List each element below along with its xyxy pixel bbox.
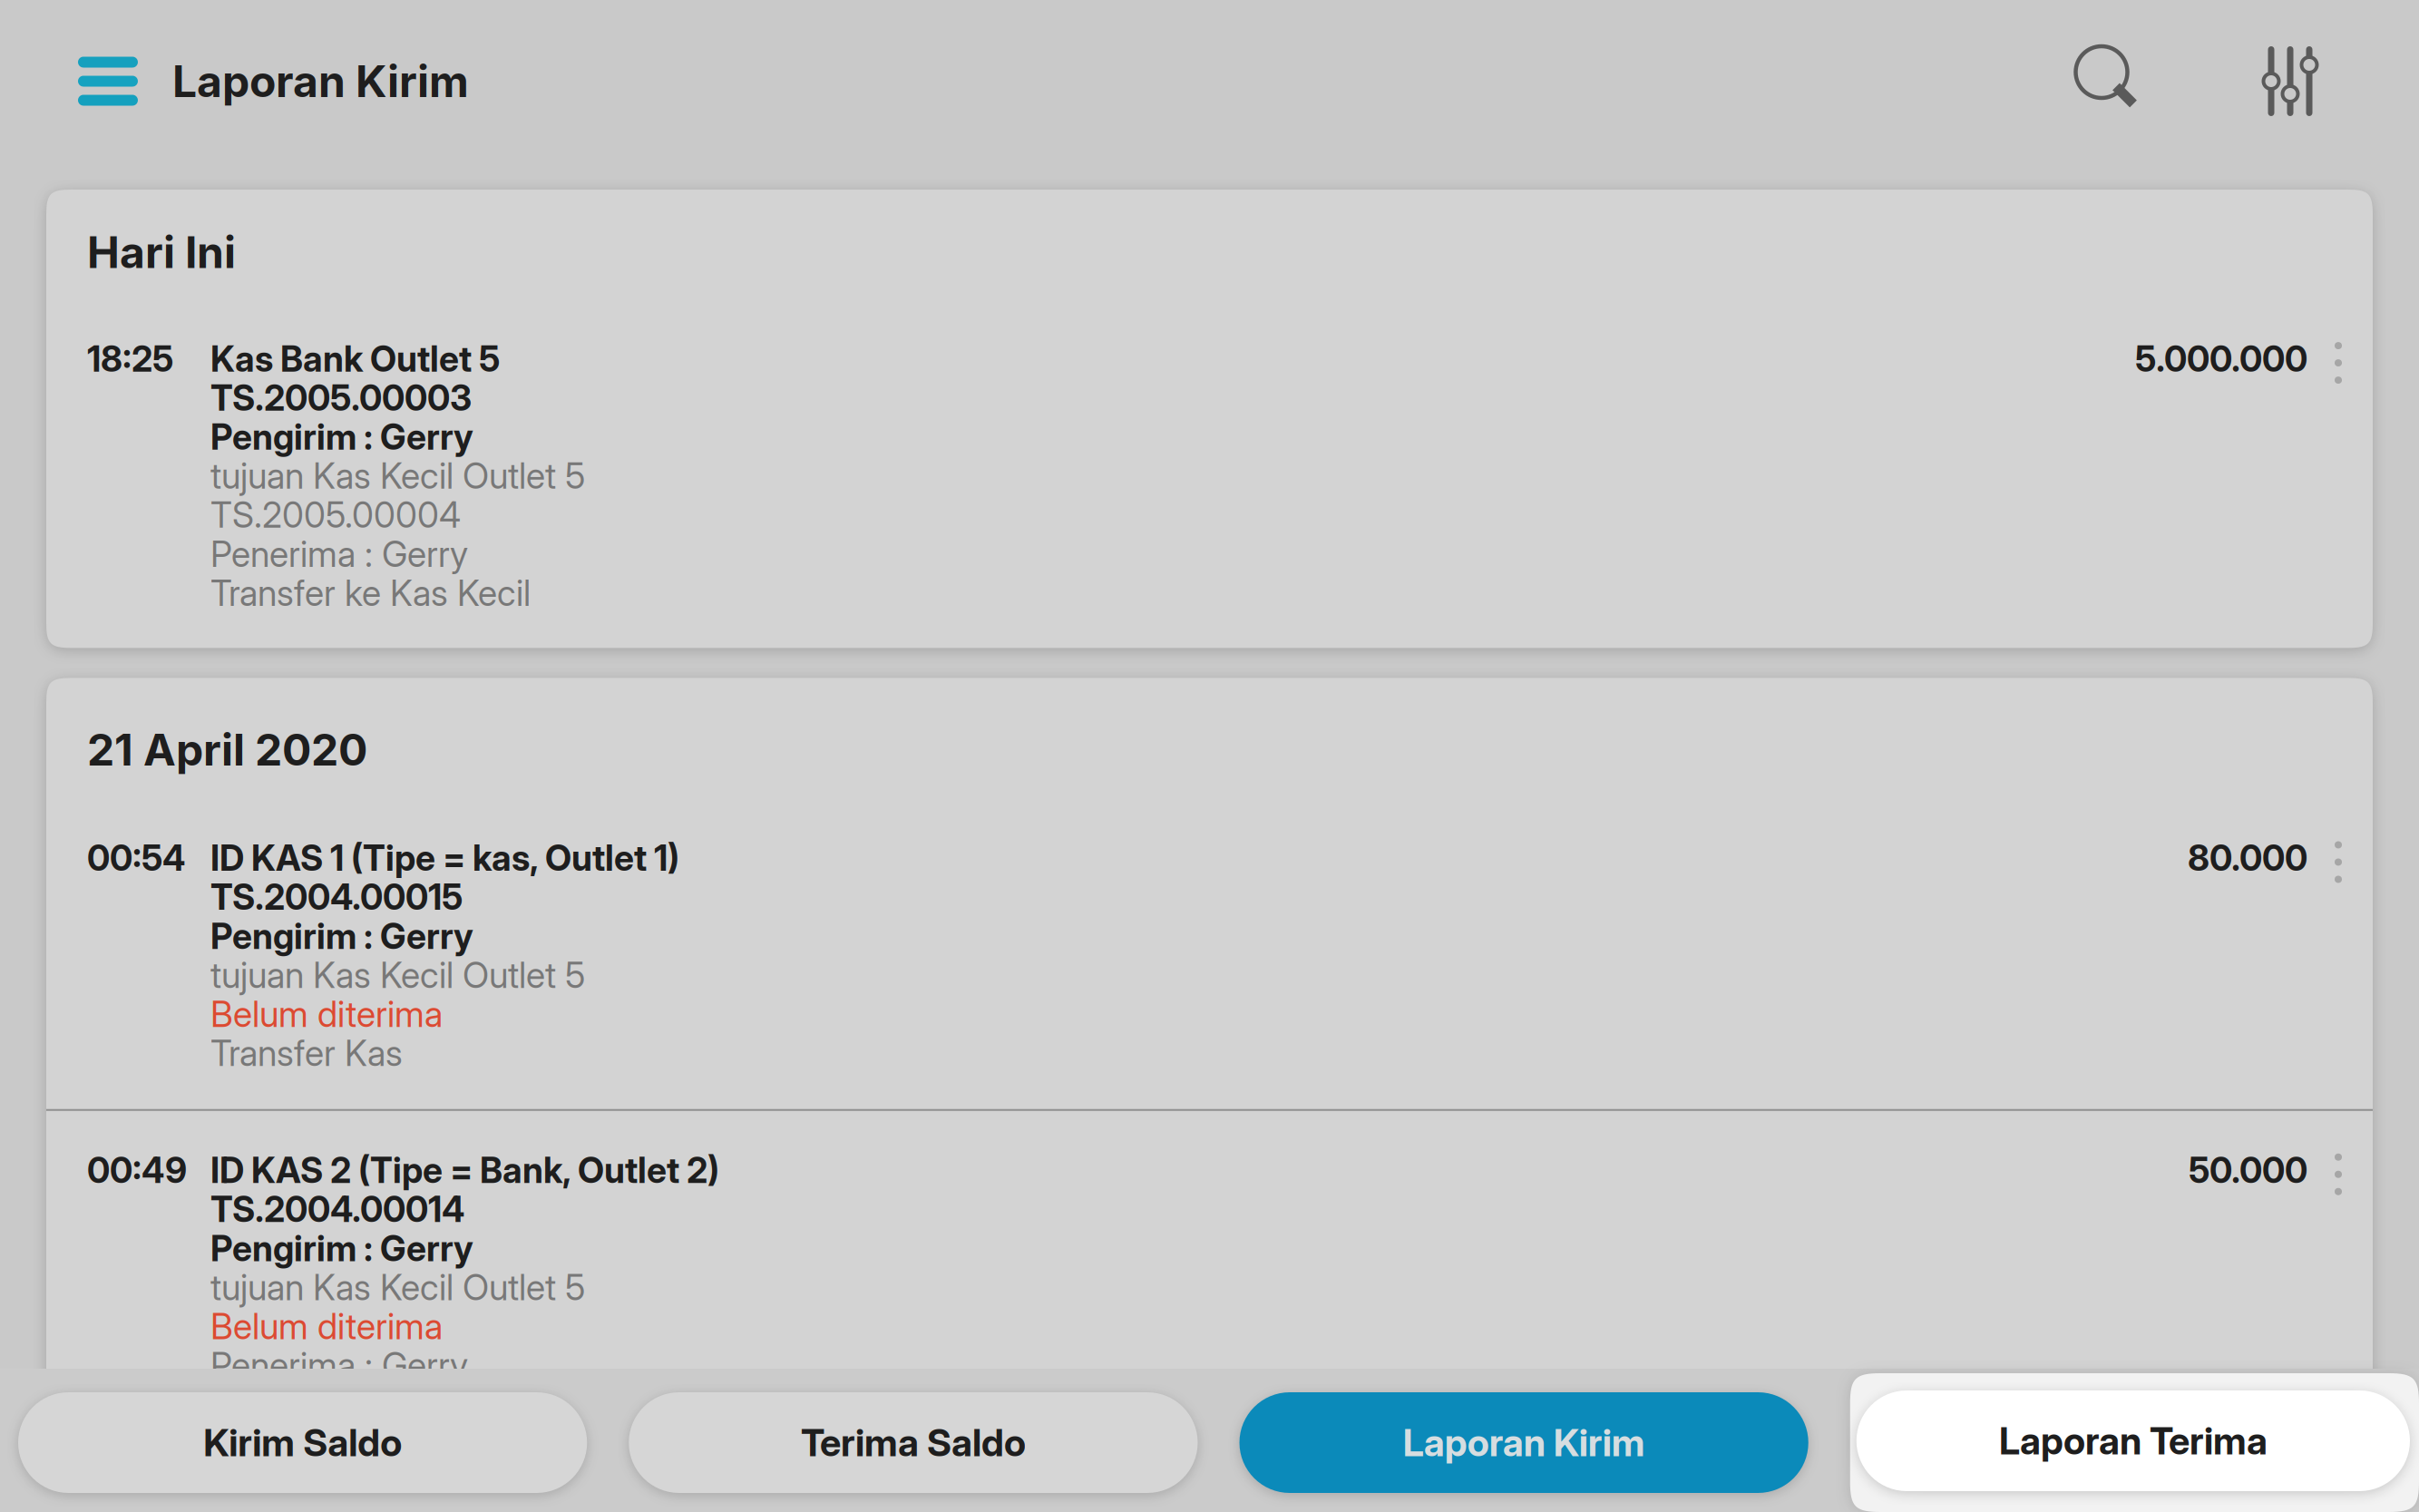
staticText: Pengirim : Gerry: [210, 417, 473, 456]
staticText: ID KAS 2 (Tipe = Bank, Outlet 2): [210, 1151, 719, 1190]
staticText: Kirim Saldo: [203, 1420, 402, 1465]
staticText: Kas Bank Outlet 5: [210, 339, 500, 378]
staticText: TS.2005.00004: [210, 496, 461, 535]
staticText: ID KAS 1 (Tipe = kas, Outlet 1): [210, 839, 679, 878]
staticText: Hari Ini: [87, 226, 236, 279]
staticText: Transfer Kas: [210, 1034, 403, 1073]
staticText: tujuan Kas Kecil Outlet 5: [210, 456, 585, 495]
button[interactable]: Filter: [2145, 43, 2317, 119]
staticText: Pengirim : Gerry: [210, 917, 473, 956]
staticText: Pengirim : Gerry: [210, 1229, 473, 1268]
staticText: 5.000.000: [2135, 339, 2307, 378]
staticText: 00:49: [87, 1151, 187, 1190]
button[interactable]: 18:25: [46, 306, 2373, 648]
button[interactable]: Laporan Terima: [1850, 1373, 2419, 1512]
staticText: TS.2005.00003: [210, 378, 472, 417]
staticText: Laporan Terima: [1999, 1418, 2267, 1463]
staticText: Terima Saldo: [801, 1420, 1026, 1465]
staticText: tujuan Kas Kecil Outlet 5: [210, 1268, 585, 1307]
staticText: TS.2004.00015: [210, 878, 463, 917]
button[interactable]: Kirim Saldo: [18, 1392, 587, 1493]
button[interactable]: Terima Saldo: [629, 1392, 1198, 1493]
staticText: 18:25: [87, 339, 173, 378]
staticText: Laporan Kirim: [172, 55, 469, 108]
staticText: 21 April 2020: [87, 723, 367, 776]
button[interactable]: 00:49: [46, 1111, 2373, 1421]
staticText: Penerima : Gerry: [210, 1346, 468, 1385]
staticText: Laporan Kirim: [1403, 1420, 1645, 1465]
staticText: 80.000: [2188, 839, 2307, 878]
button[interactable]: Menu: [78, 57, 138, 106]
staticText: TS.2004.00014: [210, 1190, 465, 1229]
staticText: 50.000: [2189, 1151, 2307, 1190]
staticText: Belum diterima: [210, 1307, 443, 1346]
button[interactable]: 00:54: [46, 812, 2373, 1109]
staticText: tujuan Kas Kecil Outlet 5: [210, 956, 585, 995]
staticText: Penerima : Gerry: [210, 535, 468, 574]
button[interactable]: Search: [2074, 43, 2145, 119]
staticText: Transfer ke Kas Kecil: [210, 574, 531, 613]
staticText: 00:54: [87, 839, 186, 878]
staticText: Belum diterima: [210, 995, 443, 1034]
button[interactable]: Laporan Kirim: [1239, 1392, 1808, 1493]
